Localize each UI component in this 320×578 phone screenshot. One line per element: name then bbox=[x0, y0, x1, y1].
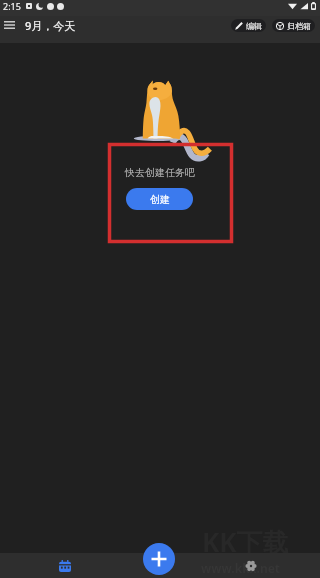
staticText: 编辑 bbox=[246, 21, 262, 31]
button[interactable]: 创建 bbox=[126, 188, 193, 210]
button[interactable]: Add bbox=[143, 543, 175, 575]
staticText: 创建 bbox=[150, 193, 170, 206]
staticText: 归档箱 bbox=[287, 21, 311, 31]
button[interactable]: Menu bbox=[0, 16, 18, 34]
staticText: www.kkx.net bbox=[201, 560, 281, 576]
staticText: 9月，今天 bbox=[25, 18, 76, 33]
staticText: KK下载 bbox=[202, 524, 289, 560]
button[interactable]: 归档箱 bbox=[272, 19, 315, 32]
button[interactable]: 编辑 bbox=[231, 19, 266, 32]
staticText: 快去创建任务吧 bbox=[125, 166, 195, 179]
button[interactable]: Settings bbox=[242, 557, 260, 575]
button[interactable]: Calendar bbox=[56, 557, 74, 575]
staticText: 2:15 bbox=[3, 0, 21, 12]
